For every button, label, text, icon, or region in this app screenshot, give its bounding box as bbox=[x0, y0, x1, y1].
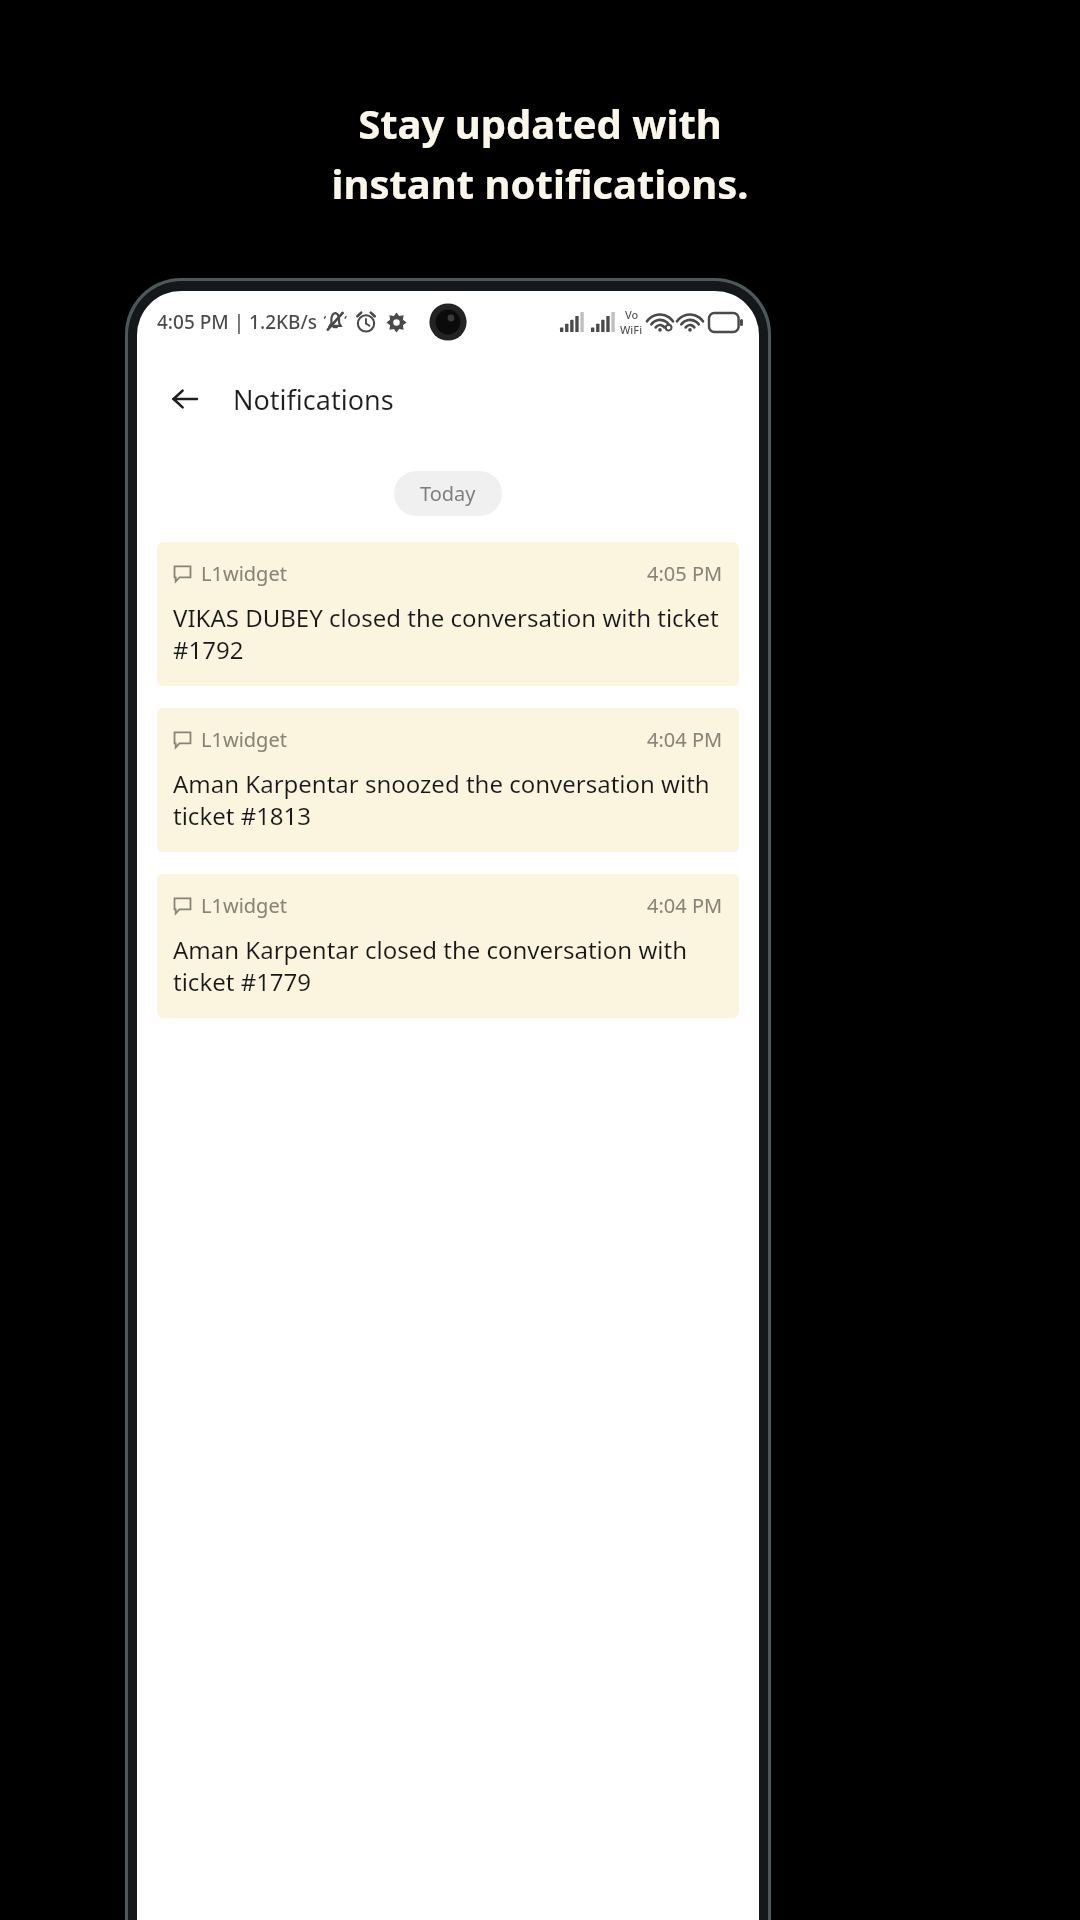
staticText: L1widget bbox=[201, 892, 287, 919]
staticText: Aman Karpentar closed the conversation w… bbox=[173, 933, 723, 998]
staticText: L1widget bbox=[201, 560, 287, 587]
button[interactable]: L1widget bbox=[157, 708, 739, 852]
staticText: 4:05 PM | 1.2KB/s bbox=[157, 309, 317, 335]
button[interactable]: Back bbox=[159, 373, 211, 425]
staticText: 4:04 PM bbox=[647, 726, 723, 753]
staticText: Today bbox=[420, 480, 476, 507]
staticText: Stay updated with bbox=[358, 96, 722, 150]
staticText: Notifications bbox=[233, 381, 394, 418]
staticText: 4:04 PM bbox=[647, 892, 723, 919]
staticText: 4:05 PM bbox=[647, 560, 723, 587]
staticText: L1widget bbox=[201, 726, 287, 753]
button[interactable]: Today bbox=[394, 471, 502, 516]
staticText: VIKAS DUBEY closed the conversation with… bbox=[173, 601, 723, 666]
staticText: WiFi bbox=[620, 322, 643, 337]
staticText: Aman Karpentar snoozed the conversation … bbox=[173, 767, 723, 832]
button[interactable]: L1widget bbox=[157, 874, 739, 1018]
staticText: instant notifications. bbox=[331, 156, 749, 210]
staticText: Vo bbox=[625, 307, 639, 322]
button[interactable]: L1widget bbox=[157, 542, 739, 686]
